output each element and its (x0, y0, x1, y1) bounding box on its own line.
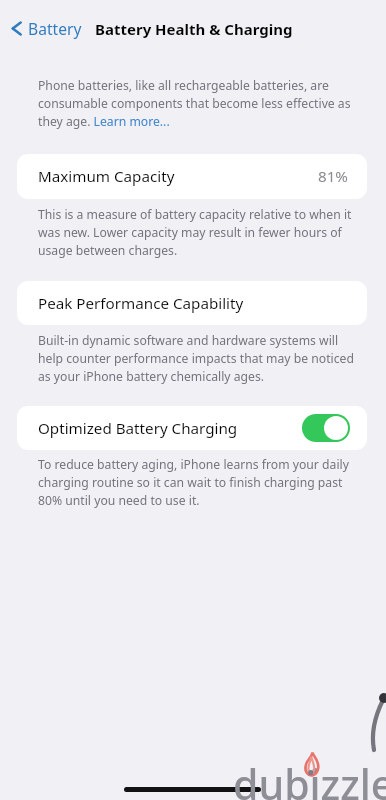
button[interactable]: Maximum Capacity 81% (17, 154, 367, 199)
staticText: Phone batteries, like all rechargeable b… (38, 77, 351, 130)
button[interactable]: Back to Battery (0, 13, 87, 44)
staticText: Built-in dynamic software and hardware s… (38, 332, 354, 385)
staticText: Optimized Battery Charging (38, 418, 238, 439)
staticText: 81% (318, 166, 348, 187)
staticText: Battery (28, 18, 82, 39)
staticText: This is a measure of battery capacity re… (38, 206, 352, 259)
button[interactable]: Optimized Battery Charging (17, 406, 367, 450)
button[interactable]: Optimized Battery Charging, on (302, 414, 350, 442)
staticText: Battery Health & Charging (95, 19, 293, 39)
button[interactable]: Peak Performance Capability (17, 281, 367, 325)
staticText: Maximum Capacity (38, 166, 175, 187)
staticText: To reduce battery aging, iPhone learns f… (38, 456, 349, 509)
staticText: dubizzle (233, 756, 386, 800)
staticText: Peak Performance Capability (38, 293, 244, 314)
